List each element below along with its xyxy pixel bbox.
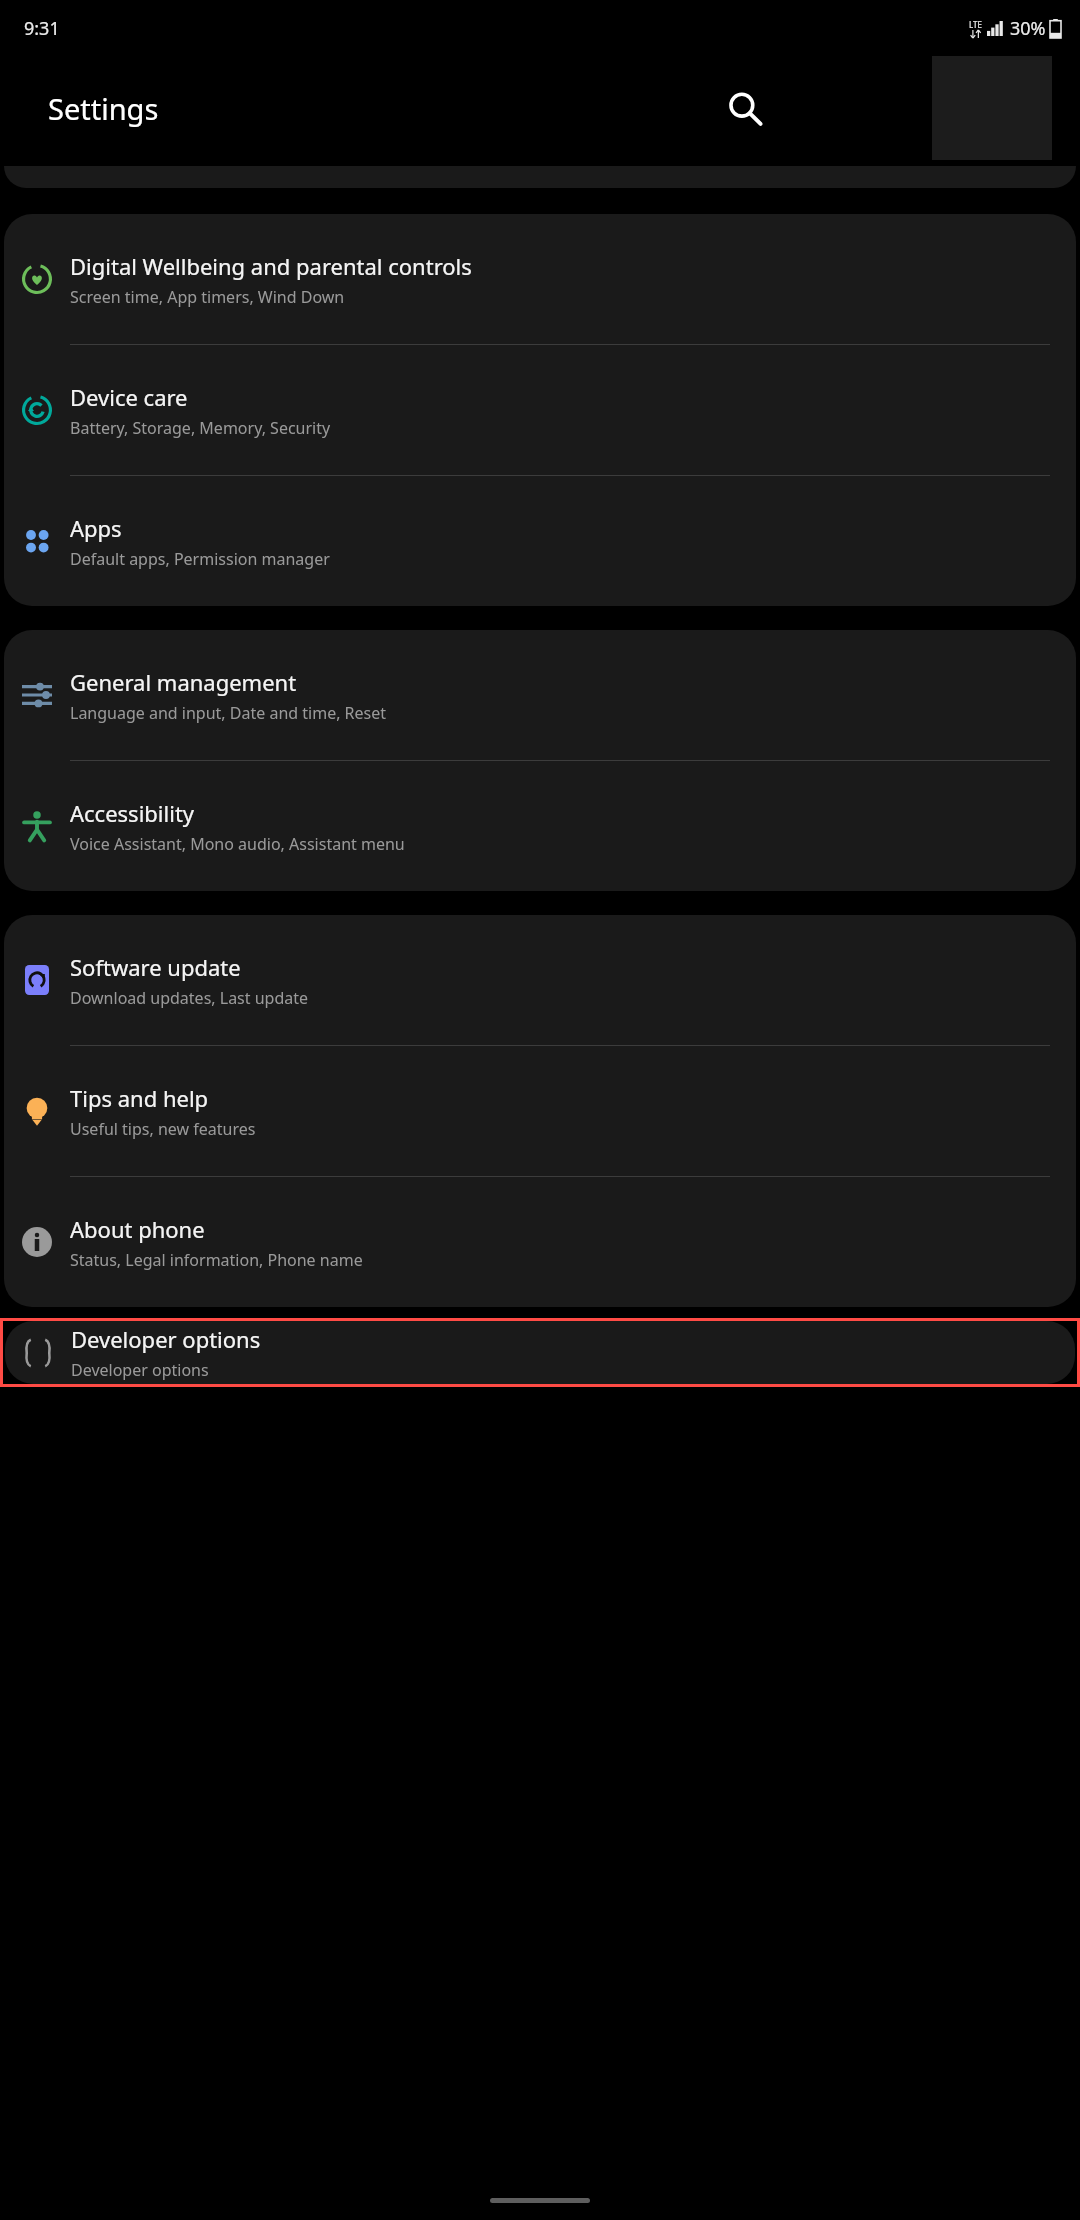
staticText: Tips and help [70,1083,209,1113]
button[interactable]: Accessibility [4,761,1076,891]
staticText: Developer options [71,1359,209,1381]
staticText: Developer options [71,1324,261,1354]
staticText: Accessibility [70,798,195,828]
staticText: LTE [969,19,982,30]
button[interactable]: General management [4,630,1076,760]
staticText: General management [70,667,297,697]
staticText: Screen time, App timers, Wind Down [70,286,345,308]
staticText: 30% [1010,16,1046,41]
staticText: Software update [70,952,241,982]
staticText: Useful tips, new features [70,1118,256,1140]
staticText: Settings [48,89,159,128]
button[interactable]: Tips and help [4,1046,1076,1176]
button[interactable]: Developer options [5,1321,1075,1384]
staticText: Digital Wellbeing and parental controls [70,251,472,281]
staticText: Device care [70,382,188,412]
button[interactable]: About phone [4,1177,1076,1307]
button[interactable]: Search [708,72,780,144]
staticText: Download updates, Last update [70,987,309,1009]
button[interactable]: Apps [4,476,1076,606]
button[interactable]: Device care [4,345,1076,475]
staticText: Battery, Storage, Memory, Security [70,417,331,439]
staticText: Apps [70,513,122,543]
button[interactable]: Software update [4,915,1076,1045]
staticText: 9:31 [24,16,60,41]
staticText: Default apps, Permission manager [70,548,330,570]
staticText: Voice Assistant, Mono audio, Assistant m… [70,833,405,855]
staticText: Language and input, Date and time, Reset [70,702,387,724]
button[interactable]: Digital Wellbeing and parental controls [4,214,1076,344]
staticText: About phone [70,1214,205,1244]
staticText: Status, Legal information, Phone name [70,1249,363,1271]
